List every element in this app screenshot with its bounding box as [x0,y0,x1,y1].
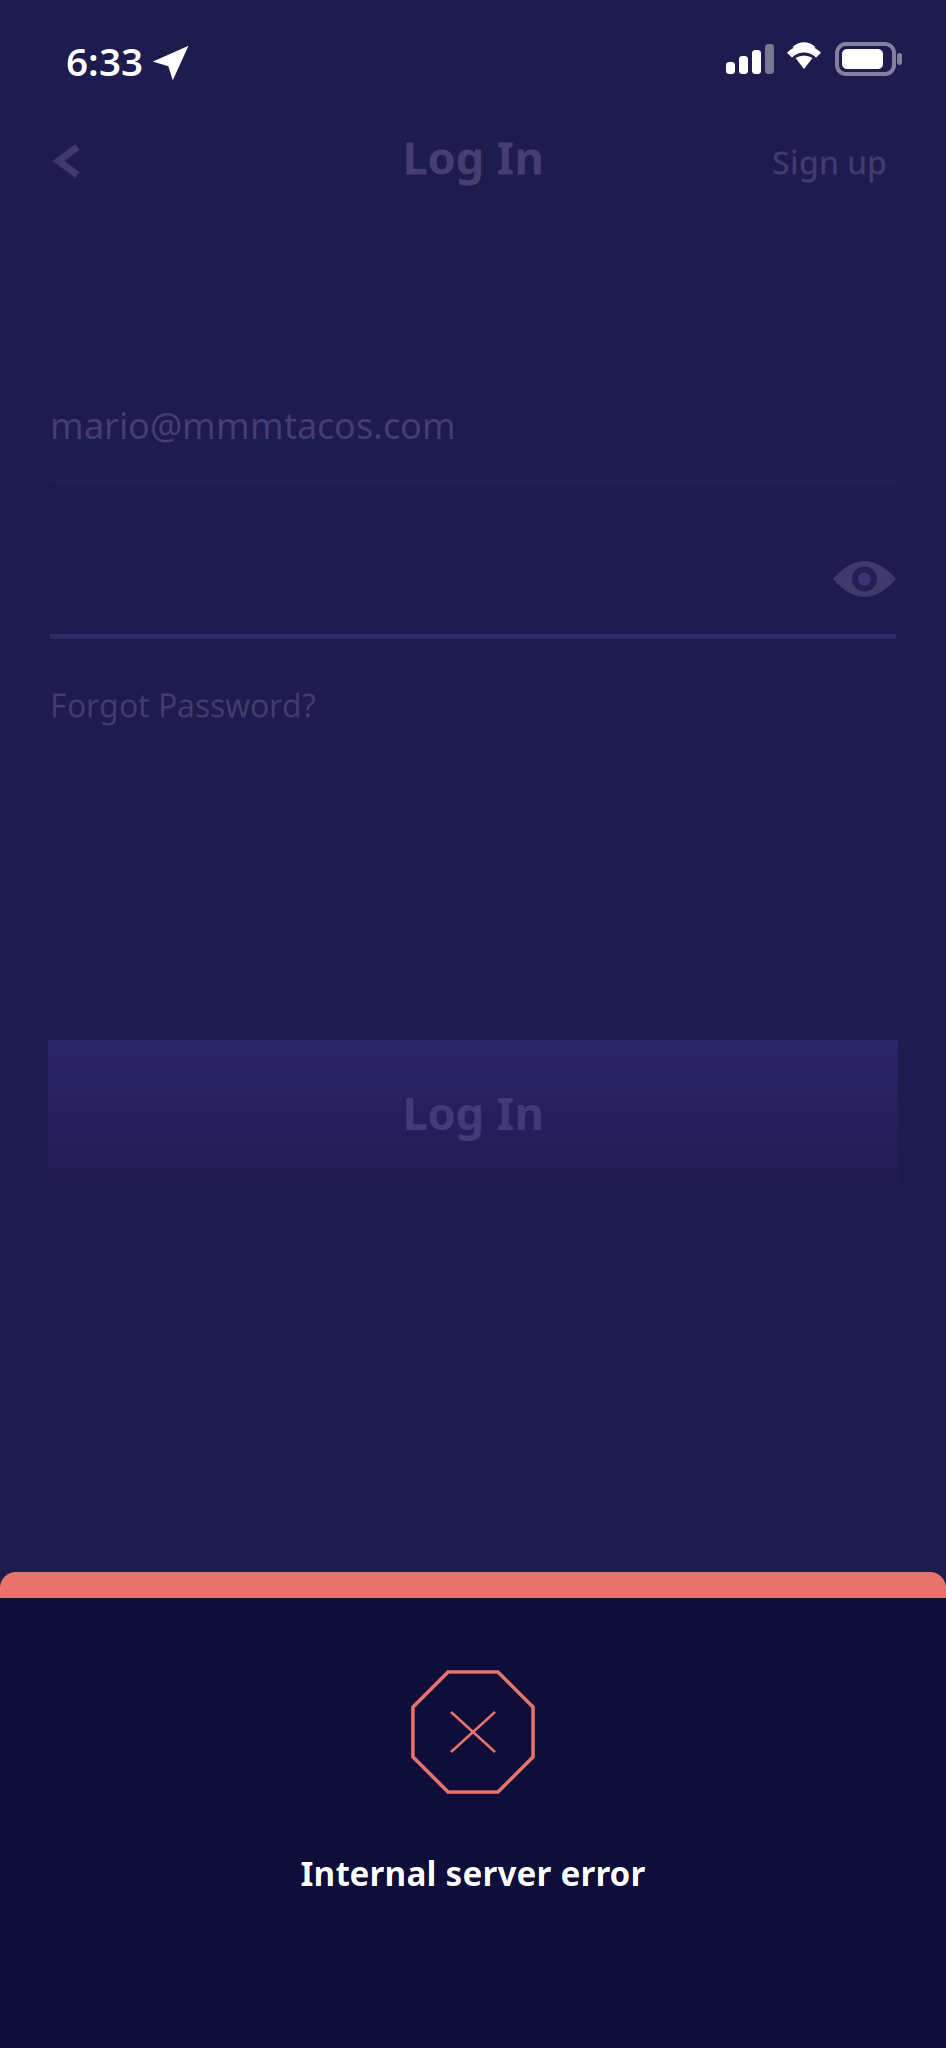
staticText: Log In [402,1082,543,1143]
button[interactable]: Log In [48,1040,898,1185]
staticText: Forgot Password? [50,684,316,726]
staticText: Internal server error [300,1851,645,1895]
button[interactable]: Back [26,112,110,196]
button[interactable]: Forgot Password? [50,679,896,731]
button[interactable]: Show password [800,546,896,624]
staticText: mario@mmmtacos.com [50,401,456,449]
staticText: Sign up [772,141,887,183]
staticText: 6:33 [66,35,143,87]
button[interactable]: Sign up [752,112,907,196]
staticText: Log In [402,127,543,187]
button[interactable]: mario@mmmtacos.com [50,399,896,483]
